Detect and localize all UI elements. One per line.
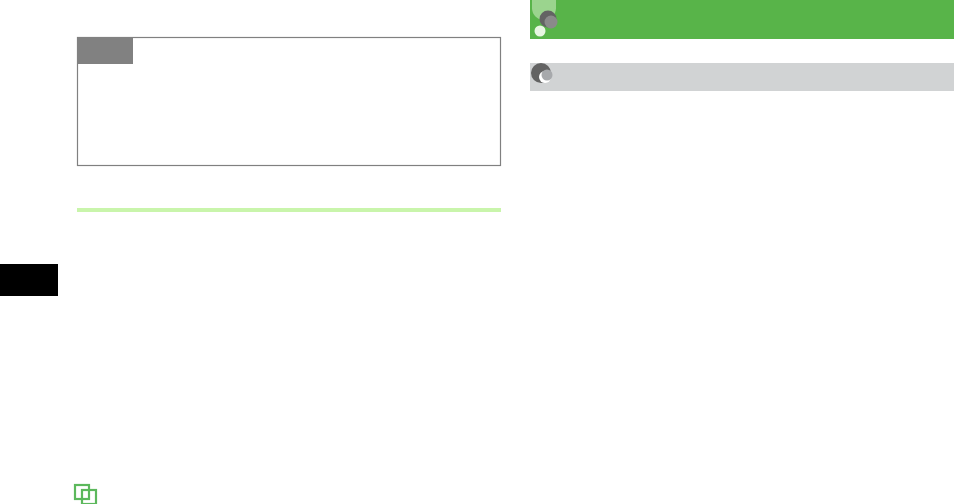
other: Status indicator [530,62,560,92]
button[interactable]: Duplicate [74,484,100,504]
button[interactable] [77,37,501,166]
other: Status indicator [530,0,570,40]
button[interactable] [530,0,954,39]
button[interactable] [530,63,954,91]
